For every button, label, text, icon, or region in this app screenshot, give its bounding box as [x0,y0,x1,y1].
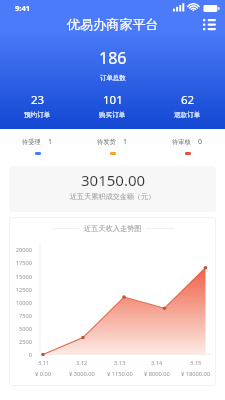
staticText: 15000 [15,273,32,281]
button[interactable]: 30150.00 [9,166,216,212]
staticText: 预约订单 [24,111,51,119]
staticText: 待发货 [97,138,116,146]
staticText: 101 [103,92,123,108]
staticText: 1 [48,137,53,147]
staticText: 20000 [15,246,32,254]
staticText: 1 [123,137,128,147]
button[interactable]: 待审核 [150,129,225,162]
staticText: 3.14 [151,359,163,367]
staticText: 优易办商家平台 [67,16,159,33]
staticText: 7500 [18,312,32,320]
staticText: 3.13 [114,359,126,367]
staticText: 2500 [18,338,32,346]
staticText: 0 [198,137,203,147]
staticText: 近五天累积成交金额（元） [70,192,156,201]
staticText: 5000 [18,325,32,333]
staticText: 购买订单 [99,111,126,119]
staticText: 3.12 [76,359,88,367]
staticText: 订单总数 [100,74,126,82]
staticText: 12500 [15,286,32,294]
button[interactable]: 菜单 [201,16,218,33]
staticText: 待受理 [22,138,41,146]
staticText: ¥ 0.00 [35,370,52,378]
button[interactable]: 待发货 [75,129,150,162]
staticText: 3.11 [38,359,50,367]
staticText: 30150.00 [81,170,146,190]
staticText: 10000 [15,299,32,307]
staticText: 17500 [15,259,32,267]
staticText: ¥ 8000.00 [144,370,170,378]
staticText: ¥ 18000.00 [181,370,211,378]
button[interactable]: 101 [75,92,150,119]
staticText: 退款订单 [174,111,201,119]
staticText: 3.15 [190,359,202,367]
staticText: ¥ 3000.00 [69,370,95,378]
button[interactable]: 62 [150,92,225,119]
staticText: 62 [181,92,195,108]
staticText: 待审核 [172,138,191,146]
button[interactable]: 待受理 [0,129,75,162]
staticText: 186 [99,47,127,69]
staticText: 23 [31,92,45,108]
staticText: ¥ 1150.00 [107,370,133,378]
button[interactable]: 23 [0,92,75,119]
staticText: 近五天收入走势图 [84,224,142,233]
staticText: 0 [28,351,32,359]
staticText: 9:41 [15,3,31,13]
